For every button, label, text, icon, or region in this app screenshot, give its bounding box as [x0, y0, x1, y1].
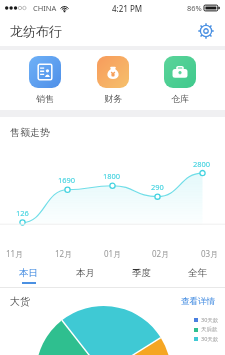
staticText: 02月 [152, 248, 170, 259]
staticText: 本月 [76, 267, 95, 279]
staticText: 1690 [58, 175, 76, 185]
button[interactable]: 查看详情 [181, 296, 215, 307]
staticText: 126 [16, 208, 29, 218]
staticText: 4:21 PM [112, 3, 143, 14]
button[interactable]: 销售 [23, 56, 67, 104]
staticText: 查看详情 [181, 296, 215, 307]
button[interactable]: 全年 [169, 262, 225, 288]
staticText: 30天款 [201, 316, 219, 324]
staticText: CHINA [33, 3, 57, 13]
button[interactable]: 本月 [57, 262, 113, 288]
staticText: 销售 [36, 93, 54, 104]
staticText: 季度 [132, 267, 151, 279]
staticText: 大货 [10, 295, 30, 308]
button[interactable]: 财务 [91, 56, 135, 104]
staticText: 本日 [19, 267, 38, 279]
staticText: 仓库 [171, 93, 189, 104]
button[interactable]: 仓库 [158, 56, 202, 104]
staticText: 财务 [104, 93, 122, 104]
staticText: 86% [187, 3, 202, 13]
staticText: 售额走势 [10, 126, 50, 139]
staticText: 290 [151, 182, 164, 192]
button[interactable]: Settings [195, 20, 217, 42]
button[interactable]: 季度 [113, 262, 169, 288]
staticText: 2800 [193, 159, 211, 169]
staticText: 12月 [55, 248, 73, 259]
button[interactable]: 本日 [0, 262, 57, 288]
staticText: 天后款 [201, 326, 218, 333]
staticText: 全年 [188, 267, 207, 279]
staticText: 龙纺布行 [10, 23, 62, 39]
staticText: 01月 [104, 248, 122, 259]
staticText: 03月 [201, 248, 219, 259]
staticText: 1800 [103, 171, 121, 181]
staticText: 30天款 [201, 335, 219, 343]
staticText: 11月 [6, 248, 24, 259]
